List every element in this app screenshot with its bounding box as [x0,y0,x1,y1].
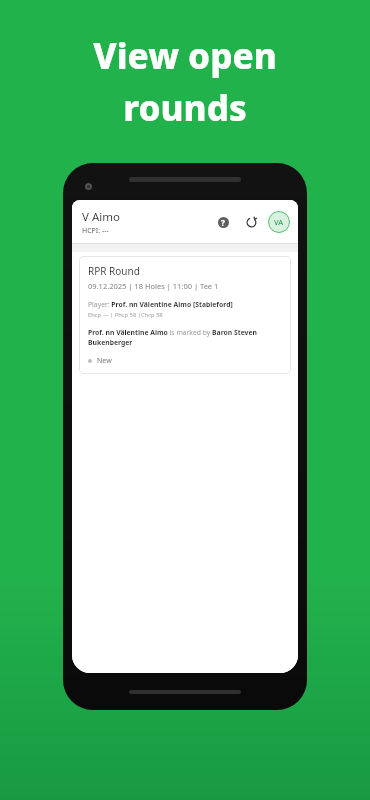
staticText: New [97,356,112,366]
staticText: RPR Round [88,264,140,278]
staticText: Prof. nn Välentine Aimo is marked by Bar… [88,328,282,347]
staticText: VA [274,217,284,227]
staticText: View open [93,32,277,80]
button[interactable]: RPR Round [79,256,291,374]
button[interactable]: Help [212,211,234,233]
staticText: ? [221,217,225,228]
staticText: 09.12.2025 | 18 Holes | 11:00 | Tee 1 [88,281,219,291]
staticText: Player: Prof. nn Välentine Aimo [Stablef… [88,300,233,309]
staticText: V Aimo [82,209,120,225]
button[interactable]: Refresh [240,211,262,233]
button[interactable]: Profile [268,211,290,233]
staticText: rounds [123,84,247,132]
staticText: Ehcp — | Phcp 58 |Chcp 58 [88,311,163,319]
staticText: HCPI: --- [82,226,109,236]
